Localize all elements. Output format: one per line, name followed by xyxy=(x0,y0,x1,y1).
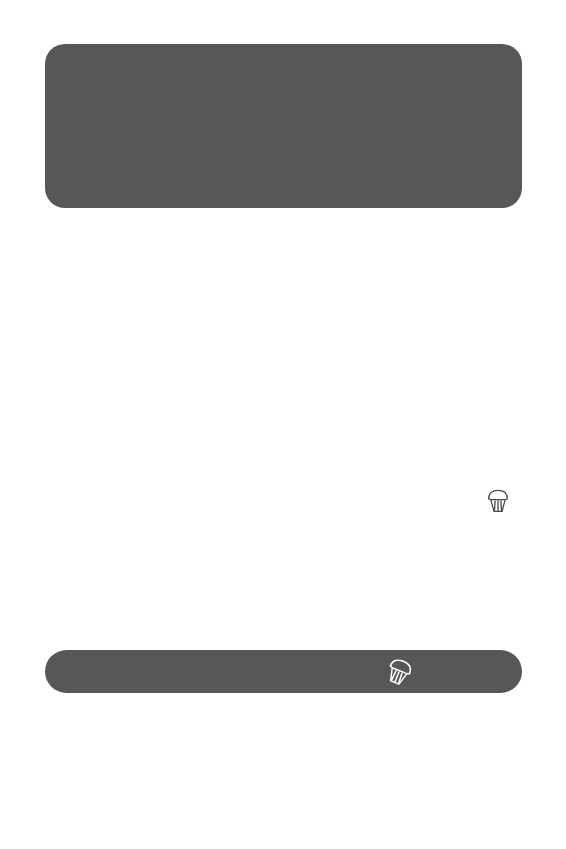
button[interactable]: Cupcake xyxy=(488,490,508,512)
button[interactable] xyxy=(45,44,522,208)
button[interactable]: Cupcake xyxy=(45,650,522,693)
button[interactable]: Cupcake xyxy=(384,657,414,687)
